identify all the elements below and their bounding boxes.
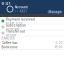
- button[interactable]: Payment received: [0, 18, 64, 24]
- staticText: 9:41: [1, 1, 10, 6]
- staticText: •• 4821: [15, 10, 27, 13]
- staticText: Monday: [6, 33, 16, 37]
- staticText: EARLIER: [1, 37, 14, 40]
- staticText: Yesterday: [6, 27, 19, 31]
- staticText: Bookstore: [1, 45, 17, 49]
- button[interactable]: Bookstore: [0, 45, 64, 49]
- staticText: -4.20: [54, 41, 62, 45]
- button[interactable]: Manage: [47, 11, 63, 14]
- staticText: Payment received: [6, 17, 35, 21]
- button[interactable]: Transfer out: [0, 30, 64, 36]
- staticText: Subscription: [6, 23, 26, 27]
- staticText: Manage: [48, 10, 61, 14]
- button[interactable]: Subscription: [0, 24, 64, 30]
- staticText: Account: [15, 5, 28, 9]
- staticText: -18.90: [53, 45, 62, 49]
- button[interactable]: Coffee bar: [0, 41, 64, 45]
- staticText: Transfer out: [6, 29, 25, 33]
- staticText: Coffee bar: [1, 41, 17, 45]
- staticText: Today, 9:05: [6, 21, 23, 25]
